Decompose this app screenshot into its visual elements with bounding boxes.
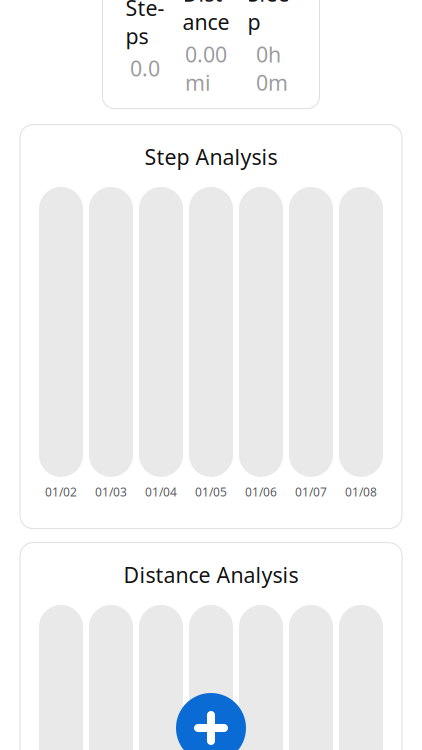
staticText: 01/04 (145, 484, 177, 500)
staticText: 01/07 (295, 484, 327, 500)
staticText: 01/08 (345, 484, 377, 500)
staticText: 0.00 mi (185, 40, 227, 97)
staticText: Steps (125, 0, 164, 50)
staticText: Step Analysis (144, 143, 277, 171)
staticText: 0.0 (130, 54, 160, 82)
staticText: 01/06 (245, 484, 277, 500)
staticText: 01/02 (45, 484, 77, 500)
staticText: Distance (182, 0, 229, 36)
staticText: Distance Analysis (123, 561, 298, 589)
staticText: 0h 0m (256, 40, 288, 97)
staticText: 01/03 (95, 484, 127, 500)
button[interactable]: Add entry (176, 693, 246, 750)
staticText: 01/05 (195, 484, 227, 500)
staticText: Sleep (247, 0, 296, 36)
